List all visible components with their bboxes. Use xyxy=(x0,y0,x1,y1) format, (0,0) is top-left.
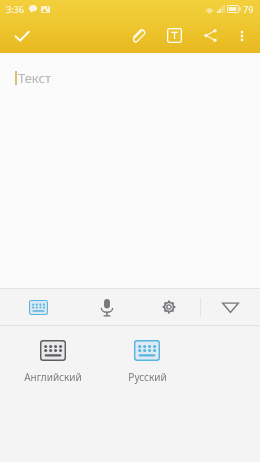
button[interactable]: Settings xyxy=(138,289,200,325)
button[interactable]: Share xyxy=(192,18,228,53)
button[interactable]: Текст xyxy=(0,53,260,288)
staticText: Текст xyxy=(18,69,51,87)
staticText: 3:36 xyxy=(6,3,24,15)
staticText: 79 xyxy=(243,3,254,15)
button[interactable]: Save xyxy=(0,18,44,53)
button[interactable]: Keyboard xyxy=(0,289,76,325)
button[interactable]: Voice input xyxy=(76,289,138,325)
button[interactable]: Hide keyboard xyxy=(201,289,260,325)
button[interactable]: Английский xyxy=(12,338,94,386)
staticText: Английский xyxy=(24,370,82,384)
button[interactable]: Text format xyxy=(156,18,192,53)
button[interactable]: Русский xyxy=(106,338,188,386)
button[interactable]: Attach xyxy=(120,18,156,53)
staticText: Русский xyxy=(128,370,167,384)
button[interactable]: More options xyxy=(228,18,256,53)
